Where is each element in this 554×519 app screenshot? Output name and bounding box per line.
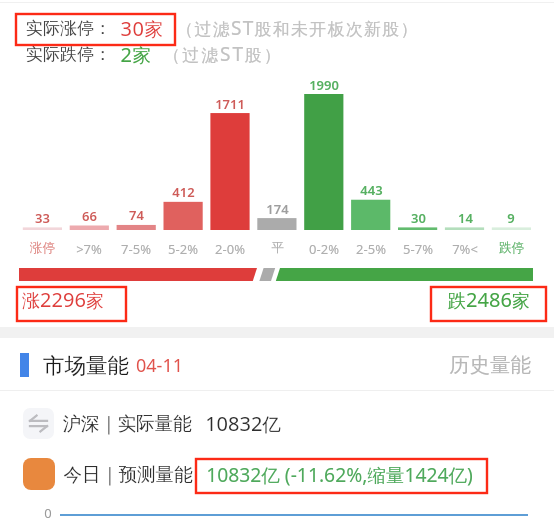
staticText: 实际涨停： <box>26 18 111 39</box>
staticText: 7-5% <box>121 240 151 258</box>
staticText: 10832亿 <box>205 410 281 437</box>
staticText: 7%< <box>452 240 478 258</box>
staticText: 2-0% <box>215 240 245 258</box>
staticText: 市场量能 <box>43 352 129 379</box>
staticText: 443 <box>360 181 383 199</box>
staticText: 涨2296家 <box>22 286 104 313</box>
staticText: 10832亿 (-11.62%,缩量1424亿) <box>206 461 473 487</box>
staticText: 5-2% <box>168 240 198 258</box>
staticText: 04-11 <box>136 353 183 378</box>
staticText: 74 <box>129 206 144 224</box>
staticText: 2-5% <box>356 240 386 258</box>
staticText: 66 <box>82 207 97 225</box>
staticText: 1990 <box>309 76 339 94</box>
button[interactable]: 今日｜预测量能 <box>0 457 554 491</box>
staticText: 30 <box>411 209 426 227</box>
staticText: 涨停 <box>30 240 55 256</box>
staticText: 174 <box>266 200 289 218</box>
staticText: 沪深｜实际量能 <box>62 412 192 435</box>
staticText: 30家 <box>120 15 164 42</box>
staticText: （过滤ST股和未开板次新股） <box>176 15 419 41</box>
staticText: 今日｜预测量能 <box>63 463 193 486</box>
button[interactable]: 市场量能 <box>0 340 554 390</box>
staticText: 14 <box>458 209 473 227</box>
staticText: 实际跌停： <box>26 44 111 65</box>
staticText: 跌2486家 <box>448 286 530 313</box>
staticText: （过滤ST股） <box>163 41 283 67</box>
staticText: >7% <box>76 240 102 258</box>
staticText: 跌停 <box>499 240 524 256</box>
staticText: 历史量能 <box>449 352 531 378</box>
staticText: 2家 <box>120 41 152 68</box>
staticText: 5-7% <box>403 240 433 258</box>
staticText: 0-2% <box>309 240 339 258</box>
other: 切换市场 <box>23 408 54 439</box>
staticText: 412 <box>172 183 195 201</box>
staticText: 平 <box>271 240 284 256</box>
staticText: 0 <box>44 504 52 519</box>
button[interactable]: 切换市场 <box>0 406 554 440</box>
staticText: 33 <box>35 209 50 227</box>
staticText: 9 <box>507 209 515 227</box>
staticText: 1711 <box>215 95 245 113</box>
